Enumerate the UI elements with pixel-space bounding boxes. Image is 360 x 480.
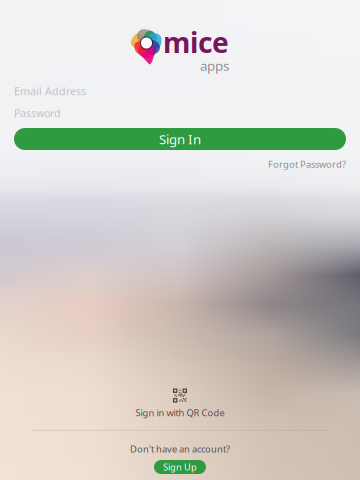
button[interactable]: Forgot Password? bbox=[0, 150, 360, 170]
button[interactable]: Sign In bbox=[0, 124, 360, 150]
button[interactable]: Password bbox=[0, 102, 360, 124]
staticText: Don't have an account? bbox=[130, 443, 230, 455]
staticText: mice bbox=[163, 24, 229, 61]
staticText: Forgot Password? bbox=[268, 158, 346, 170]
staticText: Sign Up bbox=[163, 461, 197, 473]
button[interactable]: Sign in with QR Code bbox=[135, 388, 224, 419]
staticText: Email Address bbox=[14, 84, 86, 98]
button[interactable]: Sign Up bbox=[154, 455, 206, 474]
staticText: Sign in with QR Code bbox=[135, 406, 224, 419]
staticText: Password bbox=[14, 106, 61, 120]
staticText: apps bbox=[200, 57, 229, 74]
staticText: Sign In bbox=[159, 130, 201, 148]
button[interactable]: Email Address bbox=[0, 80, 360, 102]
